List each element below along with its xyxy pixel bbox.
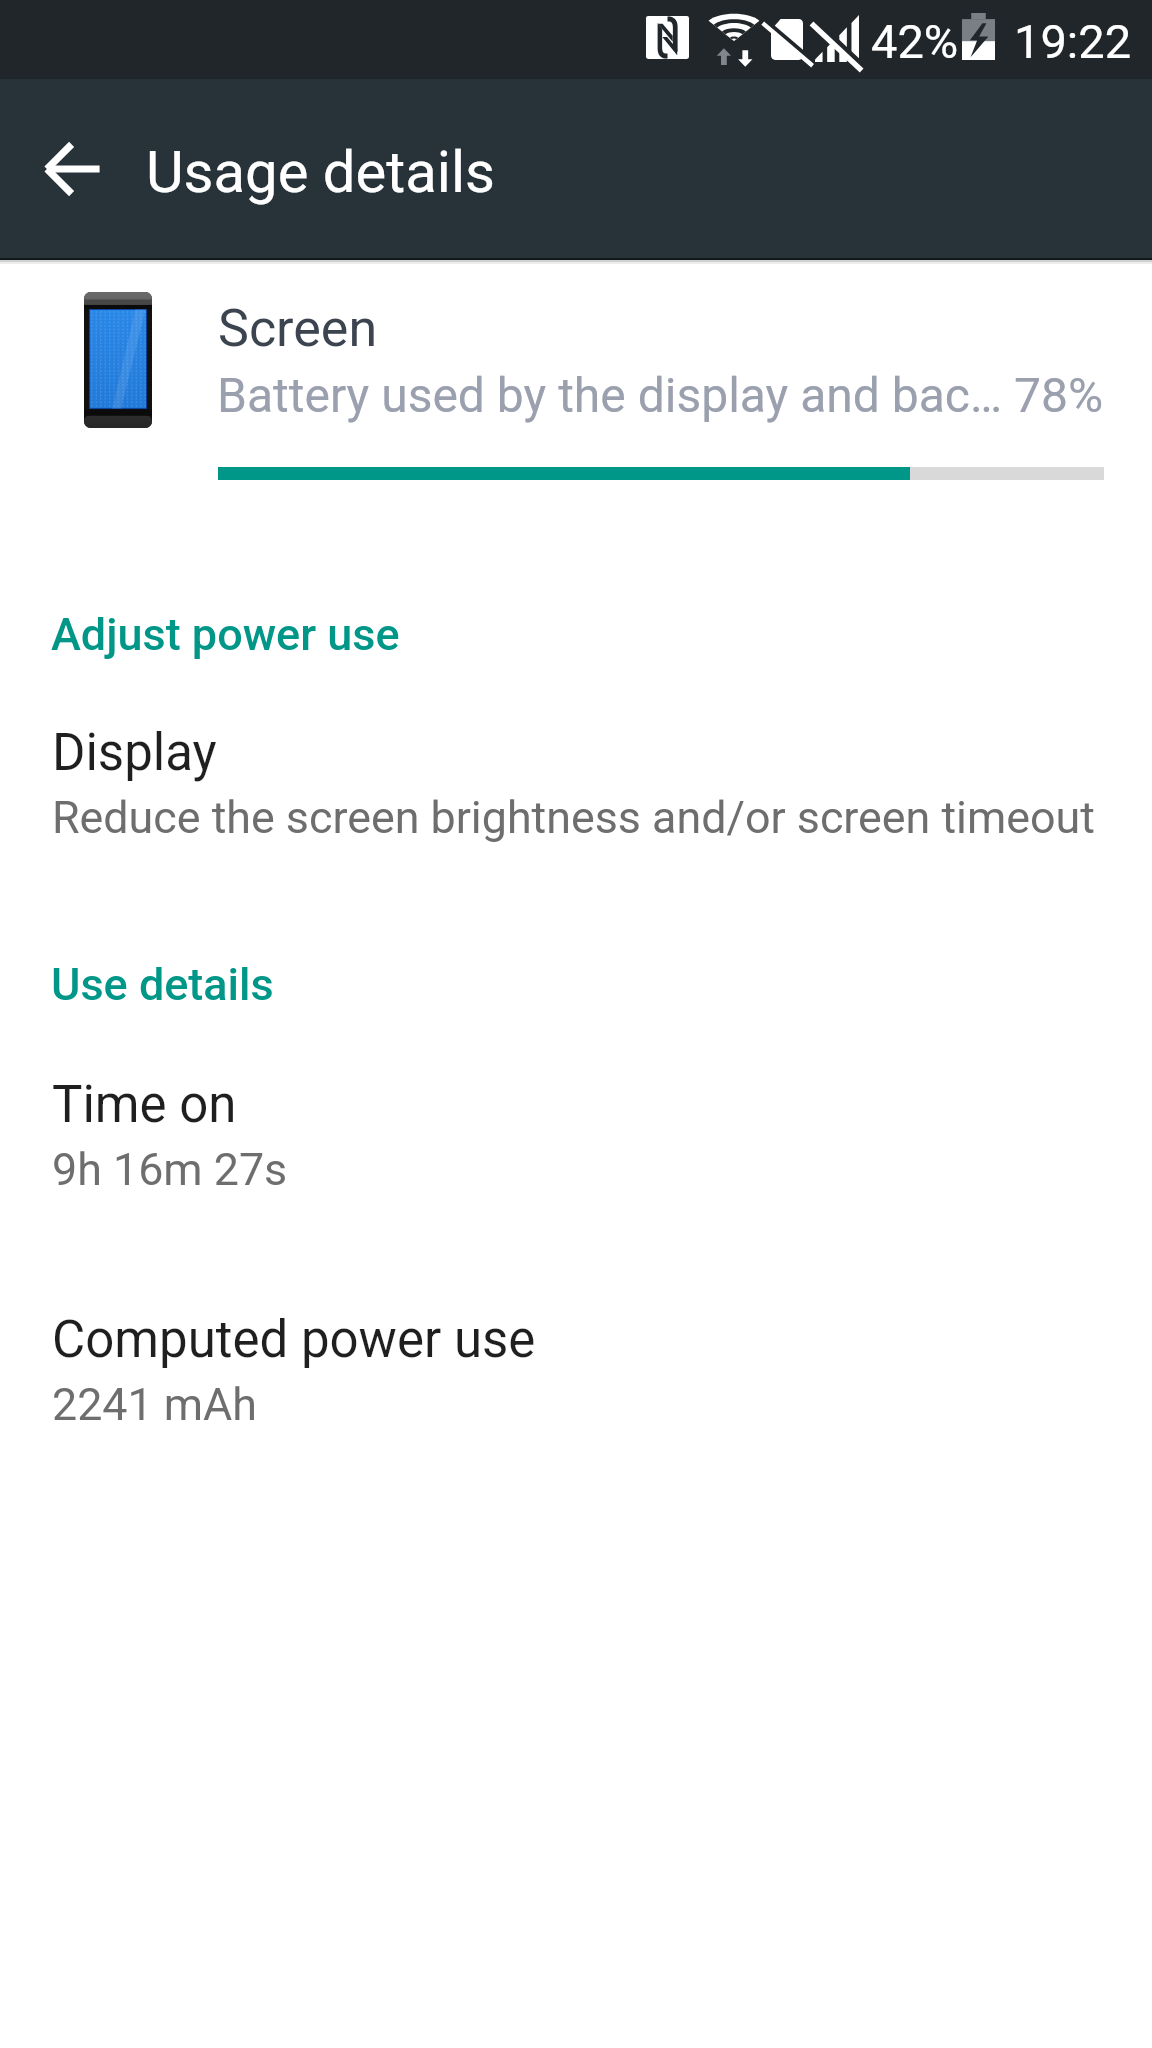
- staticText: 42%: [871, 14, 959, 69]
- button[interactable]: Navigate up: [23, 79, 123, 258]
- staticText: Time on: [52, 1075, 237, 1135]
- staticText: 19:22: [1014, 14, 1132, 69]
- staticText: 9h 16m 27s: [52, 1143, 288, 1196]
- staticText: Display: [52, 723, 217, 783]
- staticText: Screen: [218, 298, 378, 359]
- staticText: Battery used by the display and bac… 78%: [217, 367, 1104, 423]
- staticText: Reduce the screen brightness and/or scre…: [52, 791, 1095, 844]
- staticText: Use details: [51, 958, 274, 1011]
- staticText: Adjust power use: [51, 608, 400, 661]
- button[interactable]: Time on: [0, 1051, 1152, 1185]
- button[interactable]: Computed power use: [0, 1286, 1152, 1420]
- button[interactable]: Display: [0, 699, 1152, 833]
- button[interactable]: Screen: [0, 276, 1152, 498]
- staticText: Computed power use: [52, 1310, 536, 1370]
- staticText: Usage details: [146, 138, 495, 206]
- staticText: 2241 mAh: [52, 1378, 257, 1431]
